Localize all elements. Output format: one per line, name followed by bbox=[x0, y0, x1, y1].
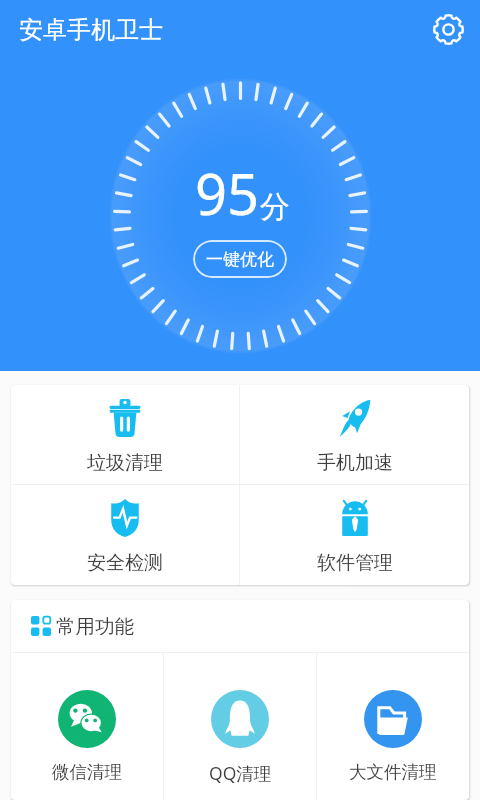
staticText: 软件管理 bbox=[317, 551, 393, 575]
staticText: 垃圾清理 bbox=[87, 451, 163, 475]
staticText: 95 bbox=[195, 155, 260, 231]
button[interactable]: 安全检测 bbox=[11, 485, 239, 585]
button[interactable]: 软件管理 bbox=[240, 485, 469, 585]
staticText: 安卓手机卫士 bbox=[19, 15, 163, 45]
button[interactable]: 一键优化 bbox=[193, 240, 287, 278]
staticText: 常用功能 bbox=[56, 614, 134, 639]
staticText: 一键优化 bbox=[206, 249, 274, 270]
staticText: 微信清理 bbox=[52, 761, 122, 783]
staticText: 分 bbox=[260, 188, 290, 226]
staticText: 手机加速 bbox=[317, 451, 393, 475]
button[interactable]: 垃圾清理 bbox=[11, 385, 239, 484]
staticText: 大文件清理 bbox=[349, 761, 437, 783]
button[interactable]: 大文件清理 bbox=[317, 653, 469, 800]
staticText: QQ清理 bbox=[209, 761, 272, 785]
button[interactable]: QQ清理 bbox=[164, 653, 316, 800]
button[interactable]: 微信清理 bbox=[11, 653, 163, 800]
button[interactable]: 手机加速 bbox=[240, 385, 469, 484]
button[interactable]: Settings bbox=[426, 7, 471, 52]
staticText: 安全检测 bbox=[87, 551, 163, 575]
